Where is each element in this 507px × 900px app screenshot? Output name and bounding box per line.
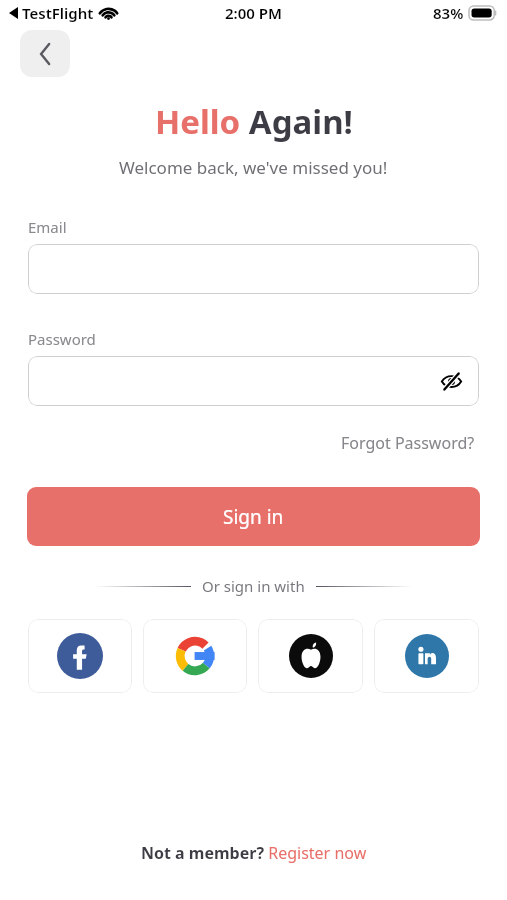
- button[interactable]: Sign in: [27, 487, 480, 546]
- staticText: TestFlight: [22, 3, 94, 23]
- staticText: Email: [28, 217, 67, 237]
- staticText: Welcome back, we've missed you!: [119, 156, 388, 179]
- staticText: Forgot Password?: [341, 432, 475, 454]
- staticText: 83%: [433, 3, 464, 23]
- staticText: Sign in: [223, 504, 284, 530]
- button[interactable]: Sign in with Facebook: [28, 619, 132, 693]
- button[interactable]: [28, 244, 479, 294]
- staticText: 2:00 PM: [225, 3, 282, 23]
- button[interactable]: Toggle password visibility: [28, 356, 479, 406]
- button[interactable]: Sign in with Google: [143, 619, 247, 693]
- staticText: Hello Again!: [155, 99, 353, 144]
- staticText: Or sign in with: [202, 576, 305, 596]
- button[interactable]: Forgot Password?: [337, 428, 479, 458]
- button[interactable]: Back: [20, 30, 70, 77]
- button[interactable]: Sign in with LinkedIn: [374, 619, 479, 693]
- staticText: Not a member? Register now: [141, 842, 367, 864]
- button[interactable]: Not a member? Register now: [135, 836, 373, 870]
- staticText: Password: [28, 329, 96, 349]
- button[interactable]: Sign in with Apple: [258, 619, 363, 693]
- button[interactable]: Toggle password visibility: [437, 367, 465, 395]
